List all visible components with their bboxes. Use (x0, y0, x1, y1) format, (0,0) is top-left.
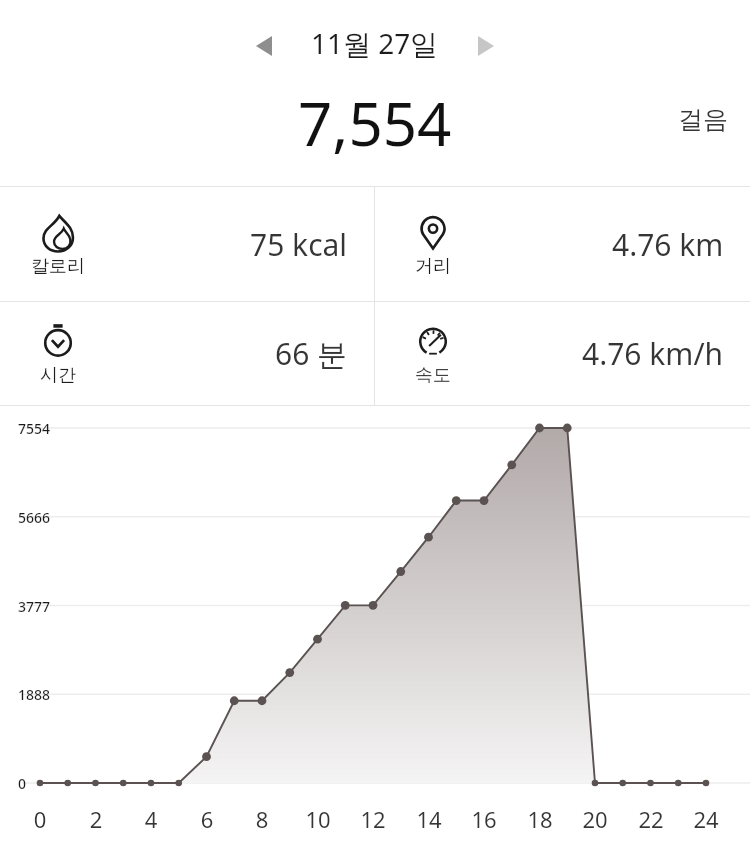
staticText: 1888 (18, 685, 51, 704)
staticText: 걸음 (678, 104, 728, 135)
staticText: 75 kcal (250, 224, 348, 265)
staticText: 속도 (415, 364, 451, 387)
staticText: 2 (82, 804, 110, 834)
staticText: 5666 (18, 508, 51, 527)
staticText: 시간 (40, 364, 76, 387)
staticText: 11월 27일 (311, 24, 439, 62)
staticText: 4 (137, 804, 165, 834)
button[interactable]: Next day (463, 26, 509, 66)
staticText: 12 (359, 804, 387, 834)
staticText: 22 (637, 804, 665, 834)
staticText: 7,554 (298, 82, 452, 164)
staticText: 14 (415, 804, 443, 834)
staticText: 16 (470, 804, 498, 834)
staticText: 24 (692, 804, 720, 834)
staticText: 0 (26, 804, 54, 834)
staticText: 18 (526, 804, 554, 834)
staticText: 0 (18, 774, 27, 793)
button[interactable]: Previous day (241, 26, 287, 66)
staticText: 3777 (18, 597, 51, 616)
button[interactable]: 시간 (0, 302, 374, 405)
staticText: 4.76 km/h (582, 333, 724, 374)
staticText: 6 (193, 804, 221, 834)
button[interactable]: 칼로리 (0, 187, 374, 301)
button[interactable]: 속도 (375, 302, 750, 405)
staticText: 20 (581, 804, 609, 834)
button[interactable]: 거리 (375, 187, 750, 301)
staticText: 10 (304, 804, 332, 834)
staticText: 8 (248, 804, 276, 834)
staticText: 66 분 (275, 333, 348, 374)
staticText: 칼로리 (31, 255, 85, 278)
staticText: 7554 (18, 419, 51, 438)
staticText: 거리 (415, 255, 451, 278)
staticText: 4.76 km (612, 224, 724, 265)
